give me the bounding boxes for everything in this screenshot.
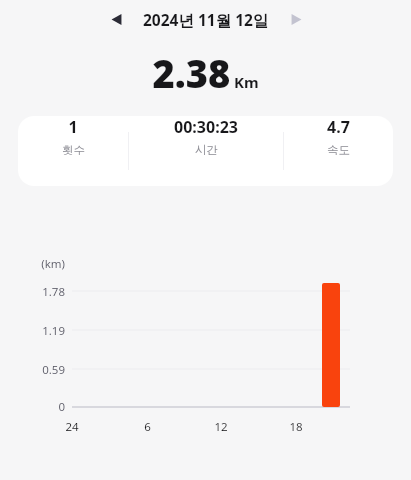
- staticText: 12: [214, 419, 228, 435]
- staticText: 1.78: [42, 284, 65, 300]
- staticText: 1: [68, 116, 78, 138]
- staticText: (km): [41, 256, 65, 272]
- button[interactable]: 00:30:23: [129, 116, 283, 157]
- staticText: 6: [144, 419, 151, 435]
- button[interactable]: Previous day: [99, 2, 133, 36]
- button[interactable]: Next day: [279, 2, 313, 36]
- staticText: 00:30:23: [174, 116, 238, 138]
- staticText: 속도: [327, 143, 350, 157]
- staticText: 시간: [195, 143, 218, 157]
- button[interactable]: 4.7: [284, 116, 393, 157]
- staticText: 24: [65, 419, 79, 435]
- staticText: 0.59: [42, 362, 65, 378]
- button[interactable]: 1: [18, 116, 393, 186]
- button[interactable]: 1: [18, 116, 128, 157]
- staticText: 4.7: [327, 116, 350, 138]
- staticText: 1.19: [42, 323, 65, 339]
- staticText: 0: [58, 399, 65, 415]
- staticText: 2.38 Km: [152, 47, 259, 99]
- staticText: 2024년 11월 12일: [143, 9, 269, 30]
- staticText: 횟수: [62, 143, 85, 157]
- staticText: 18: [289, 419, 303, 435]
